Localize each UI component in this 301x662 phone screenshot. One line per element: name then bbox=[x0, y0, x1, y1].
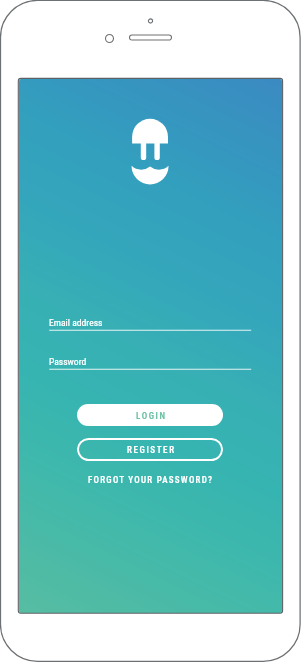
button[interactable]: LOGIN bbox=[77, 404, 223, 426]
staticText: Email address bbox=[49, 317, 103, 328]
button[interactable]: FORGOT YOUR PASSWORD? bbox=[70, 471, 230, 487]
button[interactable]: Email address bbox=[49, 314, 251, 330]
staticText: REGISTER bbox=[127, 445, 176, 456]
staticText: FORGOT YOUR PASSWORD? bbox=[88, 475, 214, 486]
staticText: LOGIN bbox=[136, 411, 167, 422]
staticText: Password bbox=[49, 356, 87, 367]
other: App logo bbox=[19, 79, 282, 613]
button[interactable]: REGISTER bbox=[77, 438, 223, 461]
button[interactable]: Password bbox=[49, 353, 251, 369]
